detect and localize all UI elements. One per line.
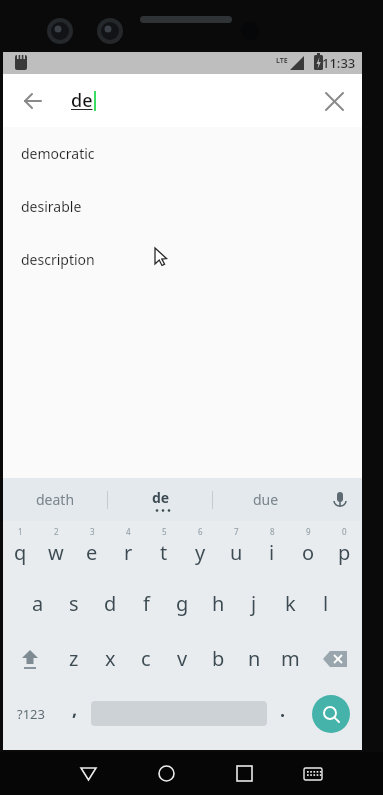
button[interactable]: 6	[182, 521, 218, 576]
button[interactable]: x	[92, 631, 128, 686]
button[interactable]: 1	[3, 521, 38, 576]
staticText: y	[195, 539, 206, 566]
button[interactable]: Recent apps	[205, 752, 283, 795]
button[interactable]: description	[3, 233, 362, 286]
button[interactable]: c	[128, 631, 164, 686]
staticText: ?123	[17, 705, 45, 723]
staticText: d	[104, 590, 117, 617]
staticText: s	[69, 590, 79, 617]
staticText: i	[269, 539, 275, 566]
button[interactable]: ,	[59, 686, 91, 741]
staticText: k	[285, 590, 296, 617]
button[interactable]: 9	[290, 521, 326, 576]
button[interactable]: Search	[299, 686, 362, 741]
staticText: t	[160, 539, 168, 566]
staticText: l	[323, 590, 329, 617]
button[interactable]: democratic	[3, 127, 362, 180]
staticText: c	[141, 645, 151, 672]
staticText: b	[212, 645, 225, 672]
button[interactable]: 2	[38, 521, 74, 576]
button[interactable]: l	[308, 576, 344, 631]
staticText: j	[251, 590, 257, 617]
button[interactable]: 5	[146, 521, 182, 576]
staticText: 8	[270, 526, 275, 537]
staticText: m	[281, 645, 300, 672]
button[interactable]: b	[200, 631, 236, 686]
staticText: v	[177, 645, 188, 672]
staticText: o	[302, 539, 315, 566]
staticText: democratic	[21, 144, 95, 163]
button[interactable]: 7	[218, 521, 254, 576]
staticText: z	[69, 645, 79, 672]
staticText: 3	[90, 526, 95, 537]
button[interactable]: Backspace	[308, 631, 362, 686]
staticText: 5	[162, 526, 167, 537]
button[interactable]: z	[56, 631, 92, 686]
button[interactable]: 8	[254, 521, 290, 576]
button[interactable]: d	[92, 576, 128, 631]
staticText: LTE	[276, 56, 288, 66]
button[interactable]: .	[267, 686, 299, 741]
button[interactable]: Voice input	[318, 478, 362, 521]
button[interactable]: de	[108, 478, 213, 521]
staticText: .	[280, 698, 286, 723]
staticText: death	[36, 490, 75, 509]
button[interactable]: g	[164, 576, 200, 631]
button[interactable]: Clear search	[316, 83, 352, 119]
staticText: 11:33	[322, 54, 356, 72]
button[interactable]: v	[164, 631, 200, 686]
staticText: desirable	[21, 197, 82, 216]
staticText: description	[21, 250, 95, 269]
staticText: q	[14, 539, 27, 566]
button[interactable]: a	[20, 576, 56, 631]
button[interactable]: Shift	[3, 631, 56, 686]
staticText: de	[152, 488, 170, 507]
staticText: 1	[18, 526, 23, 537]
staticText: a	[32, 590, 44, 617]
staticText: g	[176, 590, 189, 617]
button[interactable]: 0	[326, 521, 362, 576]
staticText: u	[230, 539, 243, 566]
staticText: 6	[198, 526, 203, 537]
button[interactable]: ?123	[3, 686, 59, 741]
staticText: 2	[54, 526, 59, 537]
button[interactable]: m	[272, 631, 308, 686]
staticText: de	[71, 88, 93, 113]
button[interactable]: 4	[110, 521, 146, 576]
staticText: r	[124, 539, 133, 566]
button[interactable]: s	[56, 576, 92, 631]
button[interactable]: Back	[15, 83, 51, 119]
button[interactable]: j	[236, 576, 272, 631]
button[interactable]: Back	[49, 752, 127, 795]
button[interactable]: desirable	[3, 180, 362, 233]
staticText: 0	[342, 526, 347, 537]
button[interactable]: Switch keyboard	[283, 752, 342, 795]
staticText: h	[212, 590, 225, 617]
staticText: x	[105, 645, 116, 672]
staticText: w	[48, 539, 64, 566]
button[interactable]: f	[128, 576, 164, 631]
button[interactable]: n	[236, 631, 272, 686]
staticText: p	[338, 539, 351, 566]
staticText: 7	[234, 526, 239, 537]
staticText: ,	[72, 697, 78, 722]
button[interactable]: 3	[74, 521, 110, 576]
staticText: 4	[126, 526, 131, 537]
staticText: due	[253, 490, 279, 509]
button[interactable]: h	[200, 576, 236, 631]
staticText: 9	[306, 526, 311, 537]
button[interactable]: due	[213, 478, 318, 521]
staticText: f	[143, 590, 150, 617]
button[interactable]: k	[272, 576, 308, 631]
button[interactable]: Home	[127, 752, 205, 795]
staticText: n	[248, 645, 261, 672]
button[interactable]: death	[3, 478, 108, 521]
staticText: e	[86, 539, 98, 566]
